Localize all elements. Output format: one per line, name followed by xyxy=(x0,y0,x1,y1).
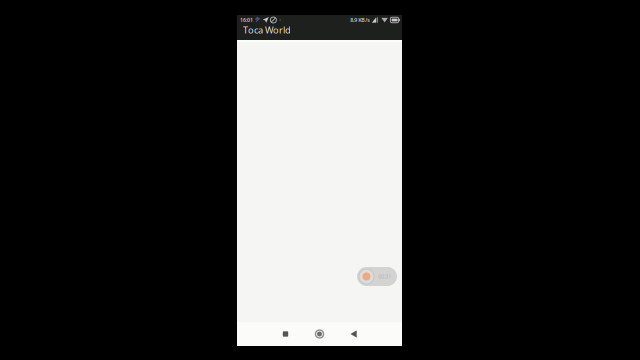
staticText: Toca World xyxy=(243,24,291,36)
button[interactable]: Back xyxy=(336,322,370,346)
staticText: 16:01 xyxy=(240,16,253,24)
staticText: 00:31 xyxy=(378,273,391,280)
button[interactable]: Recent apps xyxy=(268,322,302,346)
button[interactable]: Screen recorder xyxy=(357,267,397,286)
staticText: 8,9 KB/s xyxy=(350,16,370,24)
button[interactable]: Home xyxy=(302,322,336,346)
